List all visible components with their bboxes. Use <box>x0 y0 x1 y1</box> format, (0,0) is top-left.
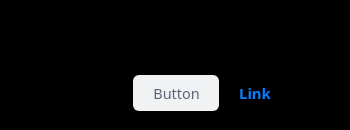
staticText: Link <box>239 83 271 103</box>
button[interactable]: Button <box>133 75 219 111</box>
staticText: Button <box>153 83 200 103</box>
button[interactable]: Link <box>239 75 271 111</box>
